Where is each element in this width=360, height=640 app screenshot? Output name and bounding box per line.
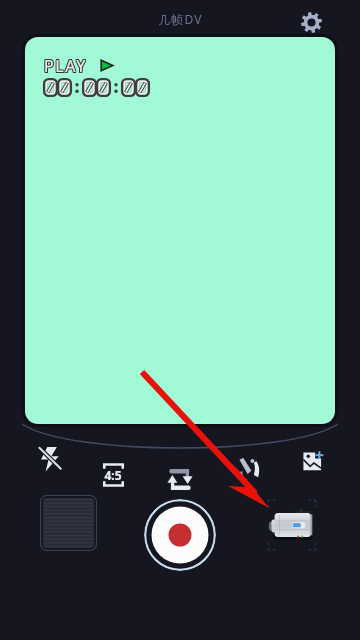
- staticText: PLAY: [45, 54, 88, 76]
- button[interactable]: Switch camera: [163, 464, 196, 494]
- button[interactable]: Gallery: [40, 495, 97, 551]
- staticText: PLAY: [43, 55, 86, 77]
- button[interactable]: Settings: [296, 7, 326, 37]
- staticText: PLAY: [44, 56, 87, 78]
- staticText: PLAY: [44, 54, 87, 76]
- staticText: PLAY: [44, 55, 87, 77]
- button[interactable]: Effects: [234, 451, 266, 485]
- button[interactable]: Camcorder: [266, 498, 318, 552]
- button[interactable]: Record: [144, 499, 216, 571]
- staticText: PLAY: [45, 55, 88, 77]
- staticText: 几帧DV: [158, 11, 203, 27]
- button[interactable]: Aspect ratio 4:5: [98, 458, 128, 491]
- staticText: 4:5: [104, 467, 122, 483]
- staticText: PLAY: [45, 56, 88, 78]
- staticText: PLAY: [43, 54, 86, 76]
- button[interactable]: Flash off: [33, 442, 65, 474]
- staticText: PLAY: [43, 56, 86, 78]
- button[interactable]: Add image: [298, 445, 328, 475]
